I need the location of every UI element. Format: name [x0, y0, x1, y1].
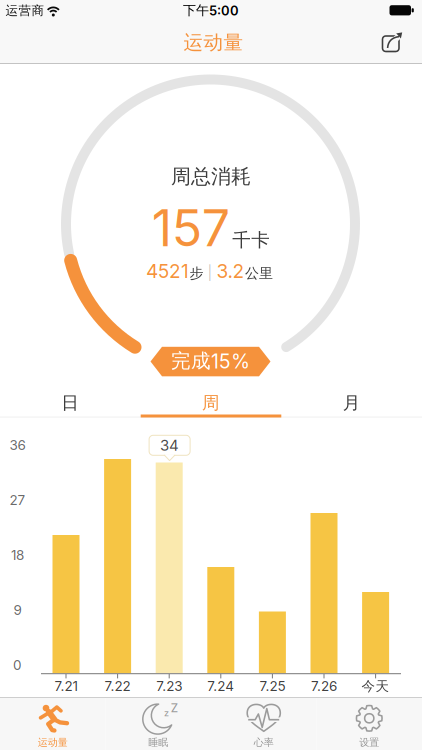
staticText: 4521	[146, 260, 189, 282]
staticText: 0	[13, 657, 22, 673]
button[interactable]	[371, 25, 411, 63]
staticText: 公里	[245, 265, 273, 282]
staticText: 运动量	[38, 736, 68, 748]
button[interactable]: 心率	[211, 698, 316, 750]
staticText: 周	[202, 392, 220, 414]
button[interactable]: 周	[141, 384, 281, 422]
staticText: 7.25	[259, 678, 285, 694]
staticText: 下午5:00	[183, 2, 239, 18]
staticText: 千卡	[232, 229, 270, 251]
staticText: 3.2	[216, 260, 244, 282]
staticText: Z	[171, 701, 178, 715]
staticText: 7.23	[156, 678, 182, 694]
staticText: 7.22	[105, 678, 131, 694]
staticText: 睡眠	[148, 736, 168, 748]
staticText: |	[207, 265, 212, 281]
button[interactable]: z	[105, 698, 211, 750]
staticText: 日	[61, 392, 79, 414]
staticText: 7.26	[311, 678, 337, 694]
staticText: 周总消耗	[171, 164, 251, 189]
staticText: 9	[13, 602, 21, 618]
staticText: 7.21	[54, 678, 77, 694]
staticText: 设置	[359, 736, 379, 748]
staticText: 运营商	[5, 3, 44, 18]
staticText: 运动量	[183, 30, 243, 54]
button[interactable]: 月	[282, 384, 422, 422]
staticText: 36	[9, 437, 25, 453]
staticText: 27	[9, 492, 25, 508]
staticText: 7.24	[207, 678, 234, 694]
staticText: z	[164, 708, 169, 718]
staticText: 今天	[362, 678, 390, 694]
staticText: 心率	[254, 736, 274, 748]
staticText: 18	[11, 547, 24, 563]
staticText: 完成15%	[171, 349, 250, 373]
button[interactable]: 运动量	[0, 698, 105, 750]
staticText: 步	[189, 265, 203, 282]
button[interactable]: 设置	[316, 698, 422, 750]
staticText: 月	[343, 392, 361, 414]
button[interactable]: 日	[0, 384, 140, 422]
staticText: 157	[152, 198, 230, 257]
staticText: 34	[160, 436, 179, 454]
